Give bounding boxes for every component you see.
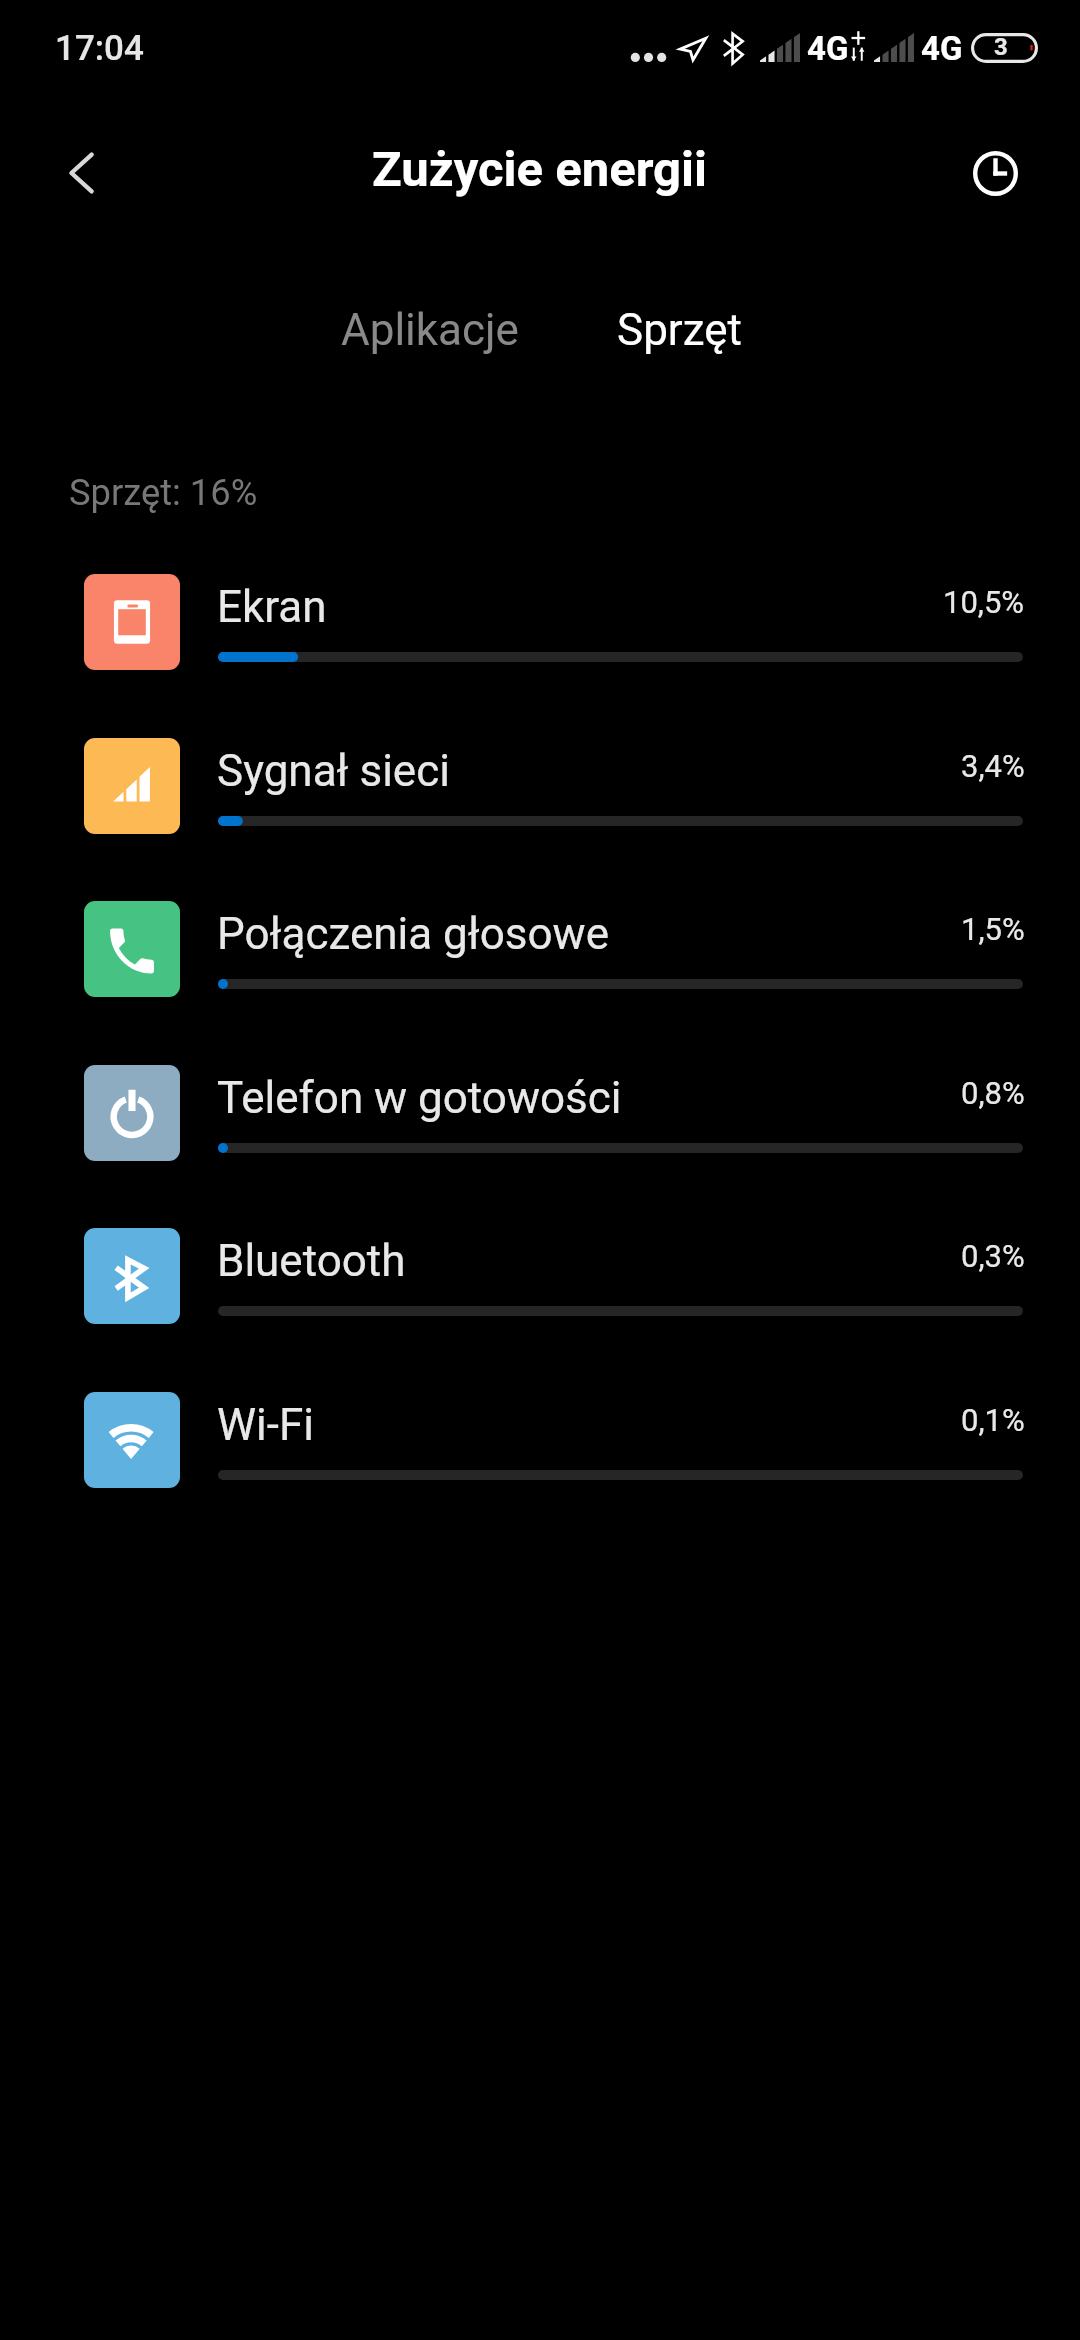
staticText: 10,5%	[943, 584, 1025, 620]
button[interactable]: Telefon w gotowości	[0, 1043, 1080, 1207]
staticText: 4G	[807, 29, 849, 68]
button[interactable]: Połączenia głosowe	[0, 879, 1080, 1043]
button[interactable]: Wi-Fi	[0, 1370, 1080, 1534]
staticText: 1,5%	[961, 911, 1025, 947]
button[interactable]: Back	[34, 125, 130, 221]
staticText: Bluetooth	[217, 1235, 406, 1287]
staticText: Sygnał sieci	[217, 745, 450, 797]
staticText: 3,4%	[961, 748, 1025, 784]
staticText: Telefon w gotowości	[217, 1072, 622, 1124]
staticText: Sprzęt: 16%	[69, 471, 258, 514]
staticText: Aplikacje	[341, 304, 519, 356]
staticText: Sprzęt	[617, 304, 742, 356]
staticText: 0,3%	[961, 1238, 1025, 1274]
button[interactable]: Usage history	[947, 125, 1043, 221]
staticText: 4G	[921, 29, 963, 68]
staticText: 3	[994, 33, 1008, 61]
staticText: Wi-Fi	[217, 1399, 314, 1451]
button[interactable]: Aplikacje	[300, 287, 560, 373]
staticText: 0,1%	[961, 1402, 1025, 1438]
staticText: 17:04	[55, 28, 144, 69]
staticText: Ekran	[217, 581, 327, 633]
staticText: Połączenia głosowe	[217, 908, 610, 960]
button[interactable]: Bluetooth	[0, 1206, 1080, 1370]
button[interactable]: Sprzęt	[564, 287, 794, 373]
staticText: 0,8%	[961, 1075, 1025, 1111]
button[interactable]: Sygnał sieci	[0, 716, 1080, 880]
button[interactable]: Ekran	[0, 552, 1080, 716]
staticText: Zużycie energii	[372, 141, 708, 198]
